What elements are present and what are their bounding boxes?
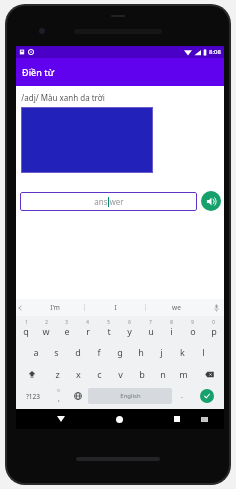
- button[interactable]: x: [68, 363, 89, 385]
- button[interactable]: 6: [119, 318, 140, 341]
- staticText: ans: [94, 196, 108, 207]
- staticText: c: [97, 368, 102, 380]
- button[interactable]: 1: [16, 318, 36, 341]
- button[interactable]: .: [172, 385, 192, 407]
- button[interactable]: ,: [48, 385, 68, 407]
- staticText: k: [180, 346, 185, 358]
- button[interactable]: l: [193, 341, 214, 363]
- staticText: ?123: [26, 392, 40, 401]
- staticText: .: [181, 391, 183, 401]
- button[interactable]: Back: [53, 411, 69, 427]
- staticText: I: [114, 303, 117, 312]
- staticText: 1: [25, 319, 28, 325]
- staticText: z: [55, 368, 60, 380]
- button[interactable]: j: [151, 341, 172, 363]
- button[interactable]: k: [172, 341, 193, 363]
- staticText: 9: [191, 319, 194, 325]
- staticText: n: [160, 368, 166, 380]
- button[interactable]: b: [131, 363, 152, 385]
- button[interactable]: Recent apps: [169, 411, 185, 427]
- staticText: h: [138, 346, 144, 358]
- button[interactable]: Home: [111, 411, 127, 427]
- staticText: a: [33, 346, 39, 358]
- button[interactable]: s: [46, 341, 67, 363]
- button[interactable]: m: [173, 363, 194, 385]
- staticText: e: [64, 325, 70, 337]
- staticText: l: [202, 346, 205, 358]
- staticText: Điền từ: [22, 66, 54, 78]
- button[interactable]: I'm: [25, 299, 84, 316]
- staticText: u: [148, 325, 154, 337]
- button[interactable]: n: [152, 363, 173, 385]
- button[interactable]: h: [130, 341, 151, 363]
- button[interactable]: Enter: [192, 385, 222, 407]
- staticText: I'm: [50, 303, 60, 312]
- button[interactable]: Change language: [68, 385, 88, 407]
- staticText: j: [160, 346, 163, 358]
- button[interactable]: Keyboard indicator: [199, 411, 209, 427]
- staticText: q: [23, 325, 29, 337]
- staticText: t: [107, 325, 111, 337]
- button[interactable]: v: [110, 363, 131, 385]
- button[interactable]: z: [47, 363, 68, 385]
- button[interactable]: c: [89, 363, 110, 385]
- staticText: 6: [128, 319, 131, 325]
- staticText: v: [118, 368, 123, 380]
- button[interactable]: 4: [77, 318, 98, 341]
- button[interactable]: 2: [36, 318, 56, 341]
- staticText: wer: [109, 196, 124, 207]
- button[interactable]: ans: [20, 192, 197, 211]
- staticText: y: [127, 325, 132, 337]
- staticText: m: [179, 368, 188, 380]
- staticText: ,: [58, 394, 60, 404]
- staticText: 7: [149, 319, 152, 325]
- staticText: g: [117, 346, 123, 358]
- staticText: f: [97, 346, 101, 358]
- staticText: 2: [45, 319, 48, 325]
- button[interactable]: d: [67, 341, 88, 363]
- staticText: r: [86, 325, 90, 337]
- button[interactable]: Play pronunciation: [201, 191, 221, 211]
- button[interactable]: 7: [140, 318, 161, 341]
- staticText: s: [54, 346, 59, 358]
- button[interactable]: 3: [56, 318, 77, 341]
- staticText: 4: [86, 319, 89, 325]
- button[interactable]: a: [26, 341, 46, 363]
- staticText: 8:08: [209, 48, 221, 56]
- button[interactable]: 5: [98, 318, 119, 341]
- button[interactable]: 0: [203, 318, 224, 341]
- button[interactable]: Shift: [16, 363, 47, 385]
- button[interactable]: Backspace: [194, 363, 224, 385]
- button[interactable]: f: [88, 341, 109, 363]
- staticText: we: [172, 303, 181, 312]
- staticText: b: [139, 368, 145, 380]
- staticText: 0: [212, 319, 215, 325]
- button[interactable]: I: [85, 299, 145, 316]
- button[interactable]: 8: [161, 318, 182, 341]
- button[interactable]: we: [146, 299, 206, 316]
- staticText: o: [190, 325, 196, 337]
- button[interactable]: English: [88, 388, 172, 404]
- staticText: /adj/ Màu xanh da trời: [21, 92, 105, 103]
- staticText: English: [120, 392, 141, 400]
- button[interactable]: ?123: [18, 385, 48, 407]
- button[interactable]: 9: [182, 318, 203, 341]
- staticText: x: [76, 368, 81, 380]
- staticText: 8: [170, 319, 173, 325]
- staticText: p: [211, 325, 217, 337]
- staticText: d: [75, 346, 81, 358]
- staticText: 3: [65, 319, 68, 325]
- staticText: 5: [107, 319, 110, 325]
- button[interactable]: g: [109, 341, 130, 363]
- staticText: i: [170, 325, 173, 337]
- staticText: w: [42, 325, 50, 337]
